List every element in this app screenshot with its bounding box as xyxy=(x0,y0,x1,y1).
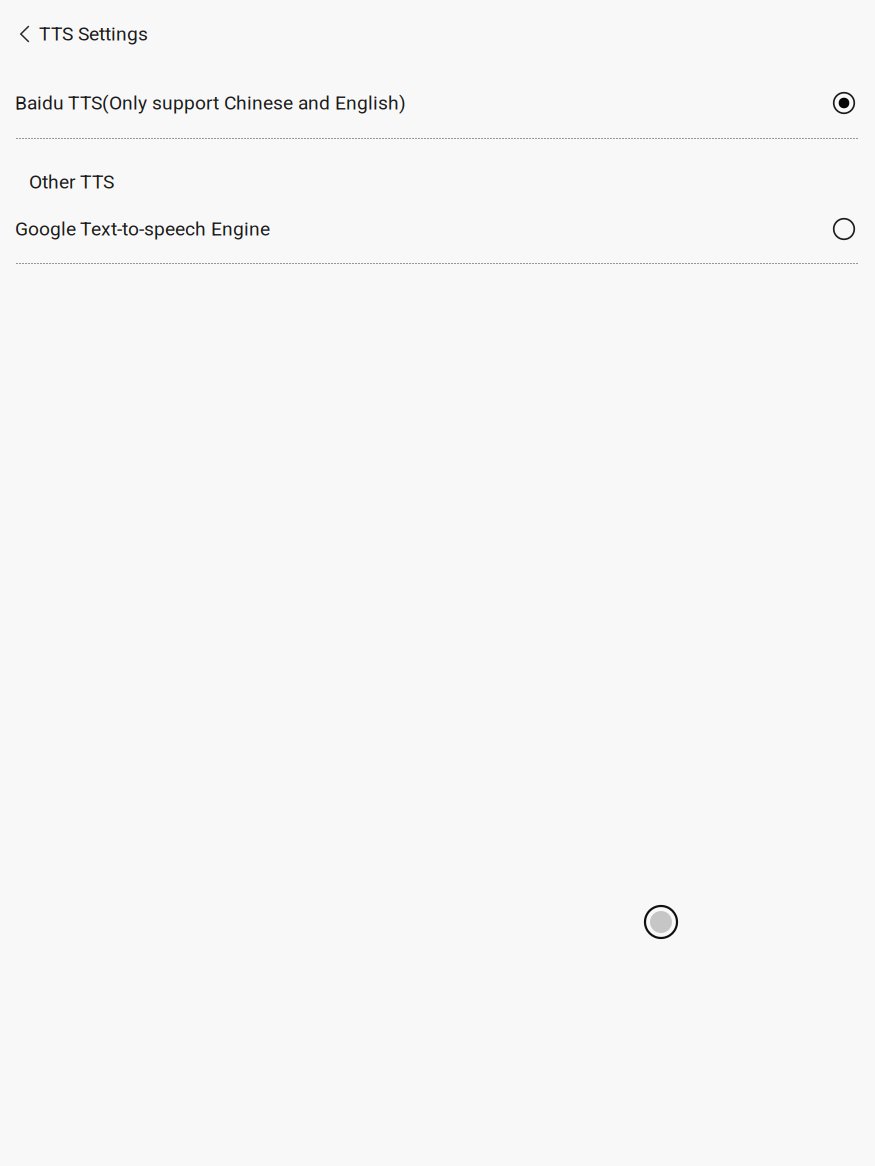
button[interactable]: Baidu TTS(Only support Chinese and Engli… xyxy=(0,68,875,138)
staticText: Other TTS xyxy=(29,171,114,193)
staticText: TTS Settings xyxy=(39,23,148,45)
staticText: Baidu TTS(Only support Chinese and Engli… xyxy=(15,92,406,114)
staticText: Google Text-to-speech Engine xyxy=(15,218,270,240)
button[interactable]: Google Text-to-speech Engine xyxy=(0,215,875,243)
button[interactable]: Back to TTS Settings xyxy=(0,0,875,68)
